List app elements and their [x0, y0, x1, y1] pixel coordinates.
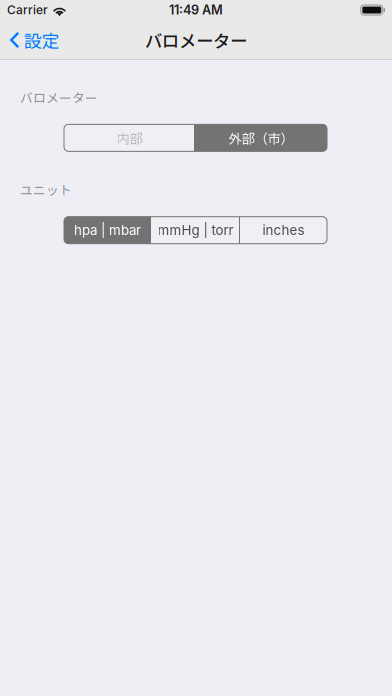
button[interactable]: 外部（市） — [195, 124, 327, 151]
staticText: inches — [262, 222, 304, 238]
button[interactable]: mmHg | torr — [151, 217, 240, 244]
button[interactable]: 設定 — [0, 20, 69, 60]
staticText: mmHg | torr — [157, 222, 233, 238]
staticText: Carrier — [7, 3, 48, 17]
button[interactable]: inches — [240, 217, 327, 244]
staticText: ユニット — [20, 180, 72, 199]
staticText: 内部 — [116, 128, 142, 147]
staticText: hpa | mbar — [74, 222, 141, 238]
button[interactable]: 内部 — [64, 124, 195, 151]
staticText: バロメーター — [20, 88, 98, 106]
staticText: 外部（市） — [228, 128, 293, 147]
staticText: 11:49 AM — [169, 2, 223, 18]
button[interactable]: hpa | mbar — [64, 217, 151, 244]
staticText: バロメーター — [145, 27, 247, 53]
staticText: 設定 — [23, 27, 59, 53]
